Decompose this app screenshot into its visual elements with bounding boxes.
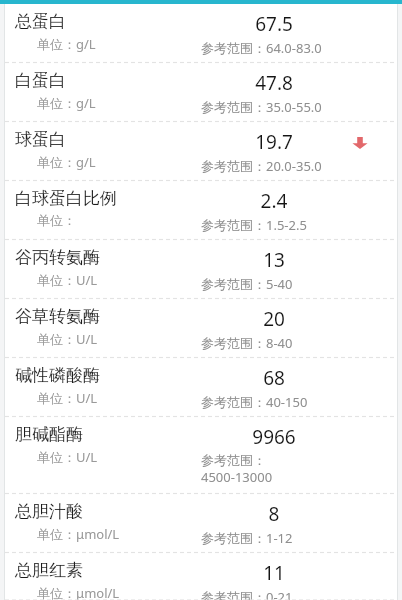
staticText: 参考范围：4500-13000 [201,452,293,486]
staticText: 单位：g/L [37,153,96,171]
staticText: 8 [201,501,347,527]
button[interactable]: 谷草转氨酶 [5,299,397,357]
staticText: 11 [201,560,347,586]
staticText: 球蛋白 [15,129,66,150]
button[interactable]: 胆碱酯酶 [5,417,397,493]
staticText: 20 [201,306,347,332]
staticText: 单位：μmol/L [37,525,120,543]
staticText: 19.7 [201,129,347,155]
staticText: 9966 [201,424,347,450]
staticText: 谷草转氨酶 [15,306,100,327]
staticText: 2.4 [201,188,347,214]
staticText: 谷丙转氨酶 [15,247,100,268]
staticText: 参考范围：40-150 [201,393,347,411]
staticText: 单位： [37,212,76,228]
button[interactable]: 碱性磷酸酶 [5,358,397,416]
button[interactable]: 总蛋白 [5,4,397,62]
staticText: 13 [201,247,347,273]
staticText: 总胆红素 [15,560,83,581]
staticText: 参考范围：0-21 [201,588,347,600]
staticText: 单位：g/L [37,94,96,112]
button[interactable]: 总胆红素 [5,553,397,600]
staticText: 参考范围：8-40 [201,334,347,352]
staticText: 胆碱酯酶 [15,424,83,445]
staticText: 单位：U/L [37,448,98,466]
staticText: 68 [201,365,347,391]
staticText: 总胆汁酸 [15,501,83,522]
button[interactable]: 谷丙转氨酶 [5,240,397,298]
staticText: 总蛋白 [15,11,66,32]
button[interactable]: 白蛋白 [5,63,397,121]
staticText: 单位：U/L [37,330,98,348]
staticText: 单位：μmol/L [37,584,120,600]
staticText: 单位：U/L [37,389,98,407]
staticText: 白球蛋白比例 [15,188,117,209]
button[interactable]: 总胆汁酸 [5,494,397,552]
staticText: 单位：g/L [37,35,96,53]
staticText: 参考范围：64.0-83.0 [201,39,347,57]
staticText: 单位：U/L [37,271,98,289]
button[interactable]: 白球蛋白比例 [5,181,397,239]
button[interactable]: 球蛋白 [5,122,397,180]
staticText: 参考范围：1-12 [201,529,347,547]
staticText: 67.5 [201,11,347,37]
staticText: 参考范围：20.0-35.0 [201,157,347,175]
staticText: 参考范围：35.0-55.0 [201,98,347,116]
staticText: 47.8 [201,70,347,96]
other: 偏低 [351,134,369,152]
staticText: 白蛋白 [15,70,66,91]
staticText: 参考范围：1.5-2.5 [201,216,347,234]
staticText: 参考范围：5-40 [201,275,347,293]
staticText: 碱性磷酸酶 [15,365,100,386]
